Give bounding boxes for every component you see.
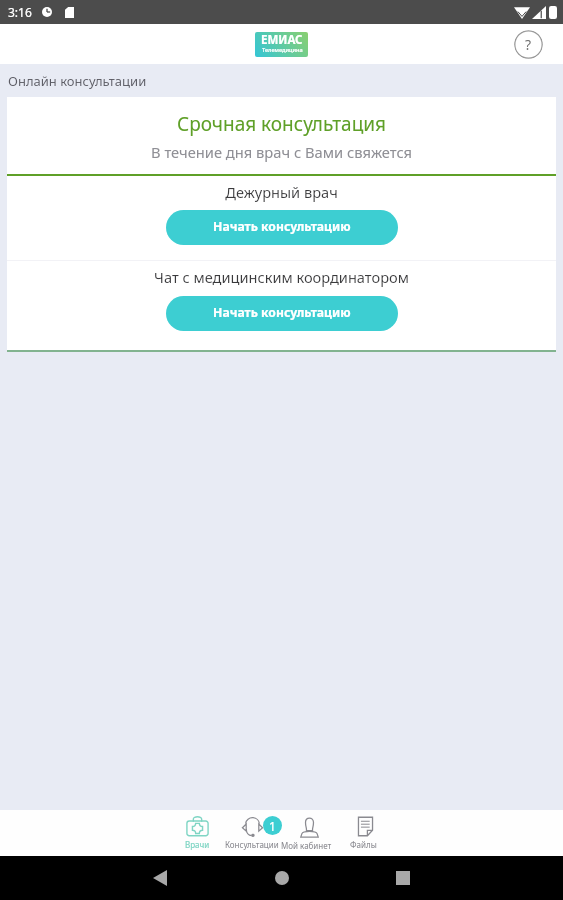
button[interactable]: Файлы bbox=[333, 810, 394, 856]
button[interactable]: Начать консультацию bbox=[166, 296, 398, 331]
button[interactable]: Начать консультацию bbox=[166, 210, 398, 245]
button[interactable]: Мой кабинет bbox=[279, 810, 333, 856]
staticText: Мой кабинет bbox=[281, 840, 332, 851]
staticText: Дежурный врач bbox=[7, 182, 556, 202]
staticText: В течение дня врач с Вами свяжется bbox=[7, 142, 556, 162]
staticText: Начать консультацию bbox=[213, 304, 351, 321]
staticText: Чат с медицинским координатором bbox=[7, 267, 556, 287]
button[interactable]: Back bbox=[142, 860, 178, 896]
staticText: 3:16 bbox=[8, 4, 32, 20]
staticText: Файлы bbox=[350, 839, 377, 850]
staticText: 1 bbox=[269, 818, 276, 834]
staticText: Срочная консультация bbox=[7, 111, 556, 137]
staticText: ЕМИАС bbox=[261, 32, 303, 48]
staticText: Онлайн консультации bbox=[8, 72, 147, 90]
staticText: Врачи bbox=[185, 839, 210, 850]
button[interactable]: Врачи bbox=[170, 810, 225, 856]
staticText: Консультации bbox=[225, 839, 279, 850]
button[interactable]: Recents bbox=[385, 860, 421, 896]
staticText: Начать консультацию bbox=[213, 218, 351, 235]
staticText: Телемедицина bbox=[262, 46, 303, 54]
staticText: ? bbox=[525, 35, 532, 54]
button[interactable]: Home bbox=[264, 860, 300, 896]
button[interactable]: 1 bbox=[225, 810, 279, 856]
button[interactable]: Help bbox=[514, 30, 543, 59]
